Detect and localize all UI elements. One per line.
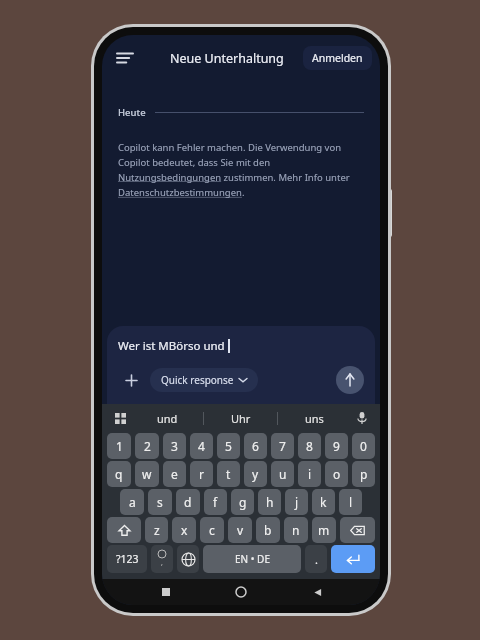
button[interactable]: j — [285, 489, 308, 515]
button[interactable]: d — [176, 489, 200, 515]
staticText: j — [295, 494, 299, 510]
button[interactable]: Anmelden — [303, 46, 372, 70]
button[interactable]: k — [312, 489, 335, 515]
staticText: g — [239, 494, 247, 510]
button[interactable]: 0 — [352, 433, 375, 459]
button[interactable]: Voice input — [351, 407, 373, 429]
staticText: l — [349, 494, 353, 510]
staticText: u — [279, 466, 287, 482]
button[interactable]: a — [120, 489, 144, 515]
button[interactable]: Apps — [109, 407, 131, 429]
staticText: v — [237, 522, 244, 538]
staticText: q — [115, 466, 123, 482]
button[interactable]: n — [284, 517, 308, 543]
button[interactable]: uns — [278, 404, 351, 432]
staticText: und — [157, 411, 178, 426]
button[interactable]: l — [339, 489, 362, 515]
staticText: k — [320, 494, 327, 510]
button[interactable]: q — [107, 461, 131, 487]
staticText: m — [318, 522, 330, 538]
button[interactable]: x — [172, 517, 196, 543]
button[interactable]: Home — [229, 580, 253, 604]
button[interactable]: o — [325, 461, 348, 487]
button[interactable]: 1 — [107, 433, 131, 459]
button[interactable]: b — [256, 517, 280, 543]
staticText: 0 — [360, 438, 367, 454]
staticText: e — [171, 466, 178, 482]
button[interactable]: Uhr — [204, 404, 277, 432]
button[interactable]: ?123 — [107, 545, 147, 573]
staticText: 6 — [252, 438, 259, 454]
staticText: 4 — [198, 438, 205, 454]
button[interactable]: Change language — [177, 545, 199, 573]
staticText: Uhr — [231, 411, 251, 426]
button[interactable]: Enter — [331, 545, 375, 573]
staticText: p — [360, 466, 368, 482]
button[interactable]: v — [228, 517, 252, 543]
button[interactable]: 4 — [190, 433, 213, 459]
button[interactable]: 3 — [163, 433, 186, 459]
staticText: b — [264, 522, 272, 538]
staticText: Copilot kann Fehler machen. Die Verwendu… — [118, 141, 364, 199]
button[interactable]: 8 — [298, 433, 321, 459]
button[interactable]: Emoji — [151, 545, 173, 573]
staticText: ?123 — [116, 552, 139, 566]
staticText: , — [161, 558, 163, 568]
staticText: 5 — [225, 438, 232, 454]
staticText: n — [292, 522, 300, 538]
button[interactable]: h — [258, 489, 281, 515]
button[interactable]: Send — [336, 366, 364, 394]
staticText: 7 — [279, 438, 286, 454]
button[interactable]: Recent apps — [154, 580, 178, 604]
button[interactable]: Menu — [109, 42, 141, 74]
staticText: z — [154, 522, 160, 538]
staticText: x — [181, 522, 188, 538]
button[interactable]: Backspace — [340, 517, 375, 543]
button[interactable]: Back — [305, 580, 329, 604]
button[interactable]: 2 — [135, 433, 159, 459]
button[interactable]: und — [131, 404, 203, 432]
button[interactable]: 6 — [244, 433, 267, 459]
staticText: EN • DE — [235, 552, 270, 566]
staticText: o — [333, 466, 341, 482]
button[interactable]: s — [148, 489, 172, 515]
staticText: 1 — [116, 438, 123, 454]
button[interactable]: c — [200, 517, 224, 543]
button[interactable]: y — [244, 461, 267, 487]
staticText: i — [308, 466, 312, 482]
button[interactable]: Shift — [107, 517, 141, 543]
button[interactable]: t — [217, 461, 240, 487]
button[interactable]: z — [145, 517, 168, 543]
staticText: Wer ist MBörso und — [118, 338, 225, 354]
button[interactable]: Add attachment — [118, 367, 144, 393]
button[interactable]: 5 — [217, 433, 240, 459]
button[interactable]: w — [135, 461, 159, 487]
staticText: d — [184, 494, 192, 510]
staticText: 3 — [171, 438, 178, 454]
button[interactable]: . — [305, 545, 327, 573]
staticText: r — [199, 466, 204, 482]
staticText: Quick response — [161, 373, 234, 387]
staticText: a — [129, 494, 136, 510]
button[interactable]: Quick response — [150, 368, 258, 392]
staticText: h — [266, 494, 274, 510]
button[interactable]: p — [352, 461, 375, 487]
staticText: s — [157, 494, 163, 510]
staticText: Neue Unterhaltung — [170, 50, 284, 67]
button[interactable]: i — [298, 461, 321, 487]
button[interactable]: g — [231, 489, 254, 515]
button[interactable]: 7 — [271, 433, 294, 459]
button[interactable]: 9 — [325, 433, 348, 459]
staticText: t — [226, 466, 231, 482]
button[interactable]: EN • DE — [203, 545, 301, 573]
button[interactable]: r — [190, 461, 213, 487]
staticText: w — [142, 466, 152, 482]
staticText: Anmelden — [312, 51, 363, 65]
button[interactable]: f — [204, 489, 227, 515]
staticText: y — [252, 466, 259, 482]
staticText: uns — [305, 411, 324, 426]
button[interactable]: m — [312, 517, 336, 543]
button[interactable]: u — [271, 461, 294, 487]
staticText: c — [209, 522, 215, 538]
button[interactable]: e — [163, 461, 186, 487]
